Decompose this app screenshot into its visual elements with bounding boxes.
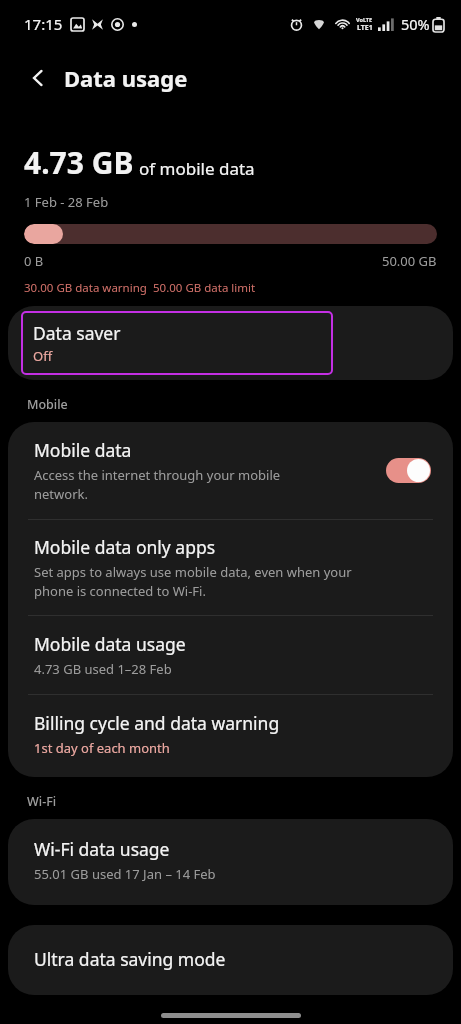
staticText: 1 Feb - 28 Feb bbox=[24, 193, 109, 211]
button[interactable]: Billing cycle and data warning bbox=[8, 695, 453, 777]
button[interactable]: Mobile data bbox=[8, 422, 453, 519]
staticText: Data usage bbox=[64, 63, 188, 93]
staticText: Billing cycle and data warning bbox=[34, 711, 280, 735]
staticText: Access the internet through your mobile … bbox=[34, 466, 281, 503]
button[interactable]: Wi-Fi data usage bbox=[8, 819, 453, 905]
button[interactable]: Ultra data saving mode bbox=[8, 925, 453, 995]
staticText: of mobile data bbox=[139, 157, 255, 180]
staticText: Ultra data saving mode bbox=[34, 947, 226, 971]
staticText: 4.73 GB bbox=[24, 142, 134, 183]
staticText: 1st day of each month bbox=[34, 739, 170, 757]
staticText: Mobile bbox=[27, 396, 68, 413]
staticText: 0 B bbox=[24, 252, 44, 270]
staticText: 50% bbox=[401, 14, 430, 34]
staticText: Mobile data bbox=[34, 438, 132, 462]
staticText: 17:15 bbox=[24, 14, 63, 34]
staticText: Wi-Fi data usage bbox=[34, 837, 170, 861]
button[interactable]: Back bbox=[18, 58, 58, 98]
button[interactable]: Mobile data usage bbox=[8, 616, 453, 694]
staticText: 4.73 GB used 1–28 Feb bbox=[34, 660, 172, 678]
staticText: Set apps to always use mobile data, even… bbox=[34, 563, 352, 600]
button[interactable]: Data saver bbox=[21, 311, 333, 375]
staticText: LTE1 bbox=[357, 23, 373, 33]
staticText: Wi-Fi bbox=[27, 793, 57, 810]
button[interactable]: Mobile data only apps bbox=[8, 520, 453, 615]
staticText: Mobile data only apps bbox=[34, 535, 216, 559]
staticText: 30.00 GB data warning bbox=[24, 280, 147, 296]
button[interactable]: Mobile data bbox=[386, 458, 431, 483]
staticText: Off bbox=[33, 347, 53, 365]
staticText: 50.00 GB data limit bbox=[153, 280, 256, 296]
staticText: Data saver bbox=[33, 321, 121, 345]
staticText: VoLTE bbox=[356, 16, 373, 23]
staticText: 50.00 GB bbox=[382, 252, 437, 270]
staticText: 55.01 GB used 17 Jan – 14 Feb bbox=[34, 865, 216, 883]
staticText: Mobile data usage bbox=[34, 632, 186, 656]
